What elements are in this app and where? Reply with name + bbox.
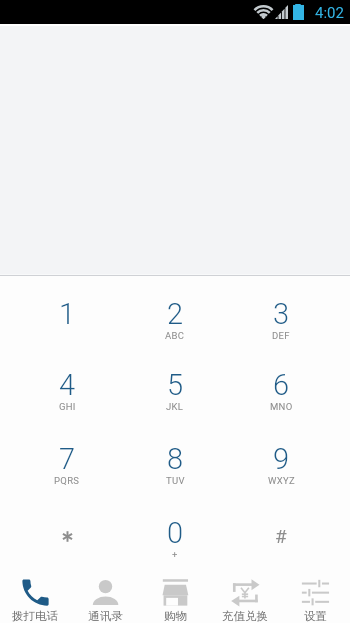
staticText: 3 — [273, 297, 290, 331]
staticText: 4:02 — [315, 4, 344, 22]
staticText: + — [172, 549, 178, 560]
button[interactable]: 通讯录 — [70, 570, 140, 623]
staticText: ABC — [165, 330, 185, 341]
button[interactable]: 9 — [231, 424, 331, 484]
button[interactable] — [17, 498, 117, 558]
staticText: PQRS — [54, 475, 80, 486]
staticText: WXYZ — [268, 475, 295, 486]
button[interactable]: 拨打电话 — [0, 570, 70, 623]
button[interactable]: 设置 — [280, 570, 350, 623]
staticText: 4 — [59, 368, 76, 402]
staticText: 通讯录 — [88, 609, 123, 623]
staticText: 充值兑换 — [222, 609, 268, 623]
staticText: TUV — [166, 475, 185, 486]
staticText: 7 — [59, 442, 76, 476]
staticText: 8 — [167, 442, 184, 476]
staticText: DEF — [272, 330, 290, 341]
staticText: # — [275, 525, 287, 547]
button[interactable]: 8 — [125, 424, 225, 484]
staticText: 6 — [273, 368, 290, 402]
staticText: MNO — [270, 401, 293, 412]
button[interactable]: 充值兑换 — [210, 570, 280, 623]
staticText: 9 — [273, 442, 290, 476]
staticText: 拨打电话 — [12, 609, 58, 623]
button[interactable]: 7 — [17, 424, 117, 484]
button[interactable]: 0 — [125, 498, 225, 558]
button[interactable]: 6 — [231, 350, 331, 410]
button[interactable]: 4 — [17, 350, 117, 410]
staticText: GHI — [59, 401, 76, 412]
button[interactable]: 5 — [125, 350, 225, 410]
button[interactable]: 3 — [231, 279, 331, 339]
button[interactable]: 2 — [125, 279, 225, 339]
staticText: 设置 — [304, 609, 327, 623]
button[interactable]: 购物 — [140, 570, 210, 623]
staticText: 0 — [167, 516, 184, 550]
button[interactable]: 1 — [17, 279, 117, 339]
staticText: 购物 — [164, 609, 187, 623]
staticText: 2 — [167, 297, 184, 331]
staticText: 1 — [59, 297, 76, 331]
button[interactable]: # — [231, 498, 331, 558]
staticText: 5 — [167, 368, 184, 402]
staticText: JKL — [166, 401, 184, 412]
